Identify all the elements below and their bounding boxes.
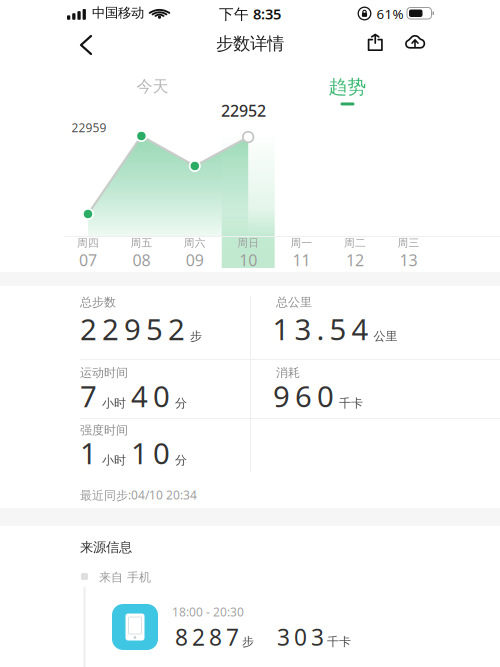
staticText: 步 bbox=[242, 634, 254, 649]
staticText: 周一 bbox=[291, 236, 313, 249]
button[interactable]: 周日 bbox=[222, 238, 275, 268]
staticText: 1 bbox=[80, 433, 97, 472]
staticText: 9 6 0 bbox=[273, 376, 334, 415]
staticText: 总公里 bbox=[276, 295, 312, 310]
staticText: 08 bbox=[132, 249, 150, 271]
button[interactable]: 今天 bbox=[122, 71, 182, 106]
staticText: 7 bbox=[80, 376, 97, 415]
staticText: 分 bbox=[175, 453, 187, 468]
staticText: 周五 bbox=[130, 236, 152, 249]
staticText: 22952 bbox=[221, 100, 266, 121]
staticText: 总步数 bbox=[80, 295, 116, 310]
staticText: 18:00 - 20:30 bbox=[172, 604, 244, 620]
staticText: 3 0 3 bbox=[277, 622, 324, 652]
staticText: 4 0 bbox=[131, 376, 170, 415]
staticText: 22959 bbox=[71, 119, 106, 135]
staticText: 8 2 8 7 bbox=[175, 622, 239, 652]
staticText: 强度时间 bbox=[80, 423, 128, 438]
button[interactable]: 云同步 bbox=[399, 28, 431, 55]
button[interactable]: 周六 bbox=[168, 238, 221, 268]
button[interactable]: 周五 bbox=[115, 238, 168, 268]
button[interactable]: 周二 bbox=[328, 238, 381, 268]
staticText: 今天 bbox=[136, 77, 168, 96]
button[interactable]: 周三 bbox=[382, 238, 435, 268]
staticText: 小时 bbox=[102, 396, 126, 411]
staticText: 趋势 bbox=[328, 75, 366, 98]
staticText: 2 2 9 5 2 bbox=[80, 309, 185, 348]
staticText: 11 bbox=[293, 249, 311, 271]
staticText: 09 bbox=[186, 249, 204, 271]
staticText: 61% bbox=[376, 5, 403, 23]
staticText: 千卡 bbox=[339, 396, 363, 411]
staticText: 12 bbox=[346, 249, 364, 271]
staticText: 最近同步:04/10 20:34 bbox=[80, 487, 197, 503]
staticText: 周三 bbox=[397, 236, 419, 249]
staticText: 周六 bbox=[184, 236, 206, 249]
staticText: 来自 手机 bbox=[99, 570, 151, 585]
staticText: 千卡 bbox=[327, 634, 351, 649]
button[interactable]: 周一 bbox=[275, 238, 328, 268]
button[interactable]: 周四 bbox=[61, 238, 114, 268]
button[interactable]: 返回 bbox=[72, 30, 100, 60]
staticText: 中国移动 bbox=[92, 4, 144, 21]
button[interactable]: 分享 bbox=[362, 28, 388, 56]
staticText: 消耗 bbox=[276, 365, 300, 380]
staticText: 周二 bbox=[344, 236, 366, 249]
button[interactable]: 趋势 bbox=[316, 71, 378, 107]
staticText: 1 3 . 5 4 bbox=[272, 309, 368, 348]
staticText: 周日 bbox=[237, 236, 259, 249]
staticText: 步 bbox=[190, 329, 202, 344]
staticText: 07 bbox=[79, 249, 97, 271]
staticText: 分 bbox=[175, 396, 187, 411]
staticText: 13 bbox=[399, 249, 417, 271]
staticText: 10 bbox=[239, 249, 257, 271]
staticText: 1 0 bbox=[131, 433, 170, 472]
staticText: 周四 bbox=[77, 236, 99, 249]
staticText: 运动时间 bbox=[80, 365, 128, 380]
staticText: 步数详情 bbox=[216, 33, 284, 54]
staticText: 公里 bbox=[373, 329, 397, 344]
staticText: 下午 8:35 bbox=[219, 4, 281, 23]
staticText: 来源信息 bbox=[80, 539, 132, 555]
staticText: 小时 bbox=[102, 453, 126, 468]
